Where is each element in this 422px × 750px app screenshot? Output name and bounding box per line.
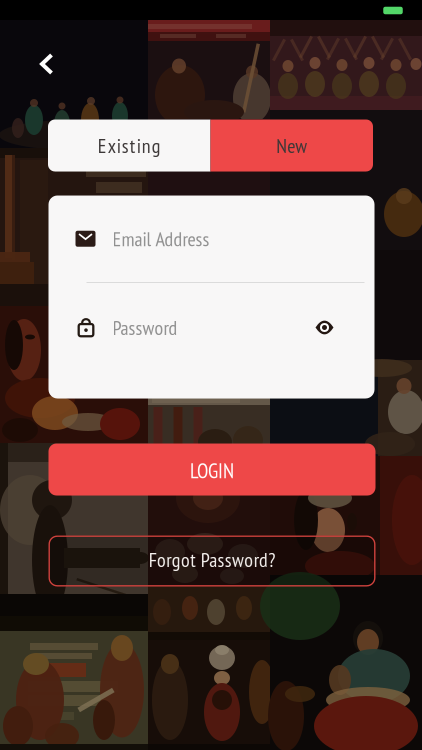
staticText: Email Address — [112, 226, 209, 252]
staticText: Password — [112, 315, 177, 340]
staticText: New — [276, 133, 307, 158]
button[interactable]: Existing — [48, 119, 210, 171]
button[interactable]: Show password — [309, 312, 339, 342]
button[interactable]: Back — [29, 47, 63, 81]
button[interactable]: Forgot Password? — [48, 535, 375, 586]
staticText: Forgot Password? — [149, 547, 275, 572]
button[interactable]: LOGIN — [48, 443, 375, 495]
button[interactable]: New — [210, 119, 373, 171]
staticText: Existing — [98, 133, 161, 158]
staticText: LOGIN — [190, 457, 234, 484]
